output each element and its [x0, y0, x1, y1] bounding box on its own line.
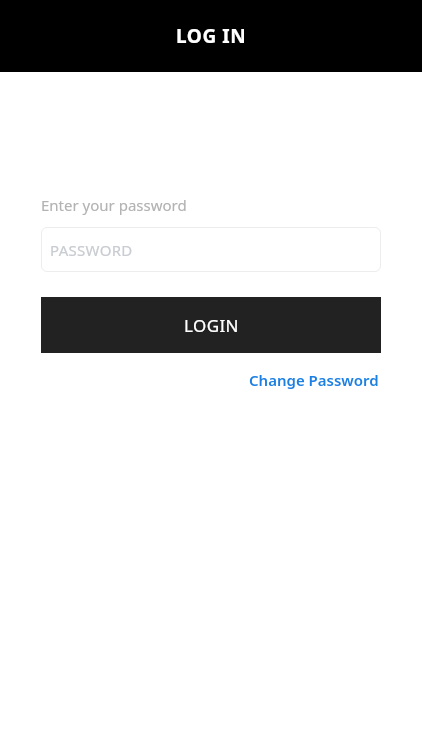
staticText: LOG IN	[176, 23, 247, 49]
button[interactable]: PASSWORD	[41, 227, 381, 272]
button[interactable]: Change Password	[247, 368, 381, 392]
staticText: LOGIN	[184, 314, 239, 337]
staticText: Enter your password	[41, 195, 187, 215]
button[interactable]: LOGIN	[41, 297, 381, 353]
staticText: PASSWORD	[50, 240, 133, 260]
staticText: Change Password	[249, 370, 379, 390]
